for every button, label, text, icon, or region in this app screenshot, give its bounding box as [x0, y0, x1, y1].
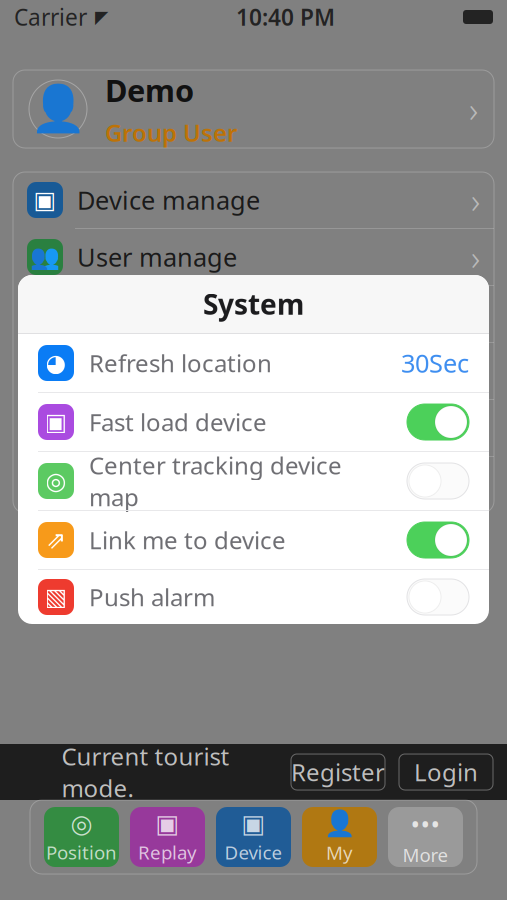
staticText: Exit: [77, 468, 120, 502]
staticText: •••: [410, 807, 440, 840]
staticText: ›: [471, 234, 480, 280]
staticText: Push alarm: [89, 581, 215, 613]
staticText: ✉: [35, 357, 55, 385]
staticText: 30Sec: [401, 346, 469, 380]
button[interactable]: ▣: [13, 172, 494, 229]
staticText: Device manage: [77, 183, 260, 217]
button[interactable]: ▧: [18, 570, 489, 624]
staticText: Replay: [138, 840, 197, 865]
button[interactable]: •••: [388, 807, 463, 867]
staticText: 👤: [323, 809, 355, 838]
button[interactable]: ◕: [18, 334, 489, 393]
staticText: Login: [414, 756, 478, 788]
button[interactable]: ⇥: [13, 457, 494, 513]
staticText: Group User: [105, 116, 237, 148]
staticText: ⇥: [35, 471, 55, 499]
staticText: ›: [471, 348, 480, 394]
staticText: System: [203, 285, 304, 323]
staticText: 👤: [30, 83, 86, 135]
button[interactable]: 👤: [302, 807, 377, 867]
button[interactable]: Register: [291, 754, 385, 790]
staticText: ◕: [45, 349, 66, 377]
staticText: Device: [224, 840, 282, 865]
staticText: Fast load device: [89, 406, 267, 438]
button[interactable]: ◎: [18, 452, 489, 511]
staticText: Position: [46, 840, 117, 865]
button[interactable]: ✉: [13, 343, 494, 400]
staticText: ▣: [155, 809, 179, 838]
staticText: ▣: [33, 186, 56, 214]
staticText: ›: [471, 177, 480, 223]
button[interactable]: 👥: [13, 229, 494, 286]
button[interactable]: ▢: [13, 400, 494, 457]
button[interactable]: 👤: [0, 70, 507, 148]
staticText: ›: [469, 86, 478, 132]
staticText: ◤: [95, 7, 108, 27]
staticText: ◎: [70, 809, 92, 838]
button[interactable]: Login: [399, 754, 493, 790]
staticText: ›: [471, 291, 480, 337]
staticText: Register: [291, 756, 385, 788]
staticText: ⇗: [46, 526, 66, 554]
staticText: About us: [77, 411, 184, 445]
staticText: Link me to device: [89, 524, 286, 556]
staticText: More: [402, 842, 448, 867]
staticText: 10:40 PM: [236, 2, 335, 32]
staticText: Refresh location: [89, 347, 272, 379]
staticText: ▣: [44, 408, 67, 436]
button[interactable]: ▣: [18, 393, 489, 452]
staticText: Current tourist mode.: [61, 740, 229, 804]
button[interactable]: ▣: [216, 807, 291, 867]
staticText: 👥: [30, 243, 60, 271]
staticText: Center tracking device map: [89, 449, 342, 513]
staticText: ▢: [33, 414, 56, 442]
button[interactable]: ▣: [130, 807, 205, 867]
button[interactable]: ⇗: [18, 511, 489, 570]
button[interactable]: ◎: [44, 807, 119, 867]
staticText: ▧: [44, 583, 67, 611]
staticText: My: [326, 840, 353, 865]
staticText: User manage: [77, 240, 237, 274]
staticText: Demo: [105, 70, 194, 110]
staticText: Feedback: [77, 354, 190, 388]
staticText: ▣: [241, 809, 265, 838]
button[interactable]: ⚙: [13, 286, 494, 343]
staticText: Carrier: [14, 2, 87, 32]
staticText: ◎: [45, 467, 66, 495]
